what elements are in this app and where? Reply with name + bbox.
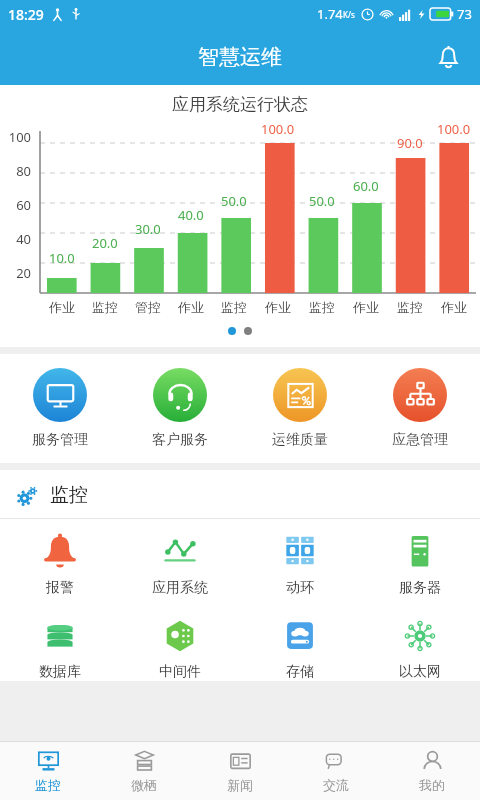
staticText: 服务器: [399, 579, 441, 597]
staticText: 报警: [46, 579, 74, 597]
staticText: 数据库: [39, 663, 81, 681]
staticText: 40.0: [178, 206, 204, 224]
staticText: 客户服务: [152, 431, 208, 449]
button[interactable]: 客户服务: [120, 368, 240, 449]
staticText: 80: [0, 162, 31, 180]
staticText: 管控: [135, 299, 161, 315]
staticText: 作业: [441, 299, 467, 315]
staticText: 监控: [35, 777, 61, 793]
button[interactable]: 中间件: [120, 617, 240, 681]
staticText: 以太网: [399, 663, 441, 681]
button[interactable]: 数据库: [0, 617, 120, 681]
button[interactable]: Notifications: [430, 39, 466, 75]
button[interactable]: 存储: [240, 617, 360, 681]
staticText: 监控: [221, 299, 247, 315]
button[interactable]: 应用系统: [120, 533, 240, 597]
staticText: 40: [0, 230, 31, 248]
button[interactable]: 应急管理: [360, 368, 480, 449]
staticText: 监控: [50, 483, 88, 507]
staticText: 100: [0, 128, 31, 146]
staticText: 90.0: [397, 134, 423, 152]
staticText: 作业: [178, 299, 204, 315]
button[interactable]: 以太网: [360, 617, 480, 681]
staticText: K/s: [343, 9, 355, 20]
staticText: 60.0: [353, 177, 379, 195]
staticText: 动环: [286, 579, 314, 597]
button[interactable]: 服务器: [360, 533, 480, 597]
staticText: 1.74: [317, 5, 343, 23]
button[interactable]: 运维质量: [240, 368, 360, 449]
staticText: 我的: [419, 777, 445, 793]
staticText: 作业: [265, 299, 291, 315]
staticText: 100.0: [261, 120, 295, 138]
staticText: 微栖: [131, 777, 157, 793]
staticText: 应用系统: [152, 579, 208, 597]
staticText: 应用系统运行状态: [0, 94, 480, 115]
button[interactable]: 服务管理: [0, 368, 120, 449]
staticText: 监控: [309, 299, 335, 315]
staticText: 运维质量: [272, 431, 328, 449]
staticText: 60: [0, 196, 31, 214]
button[interactable]: 报警: [0, 533, 120, 597]
staticText: 中间件: [159, 663, 201, 681]
staticText: 存储: [286, 663, 314, 681]
staticText: 监控: [397, 299, 423, 315]
staticText: 20.0: [92, 234, 118, 252]
staticText: 50.0: [309, 192, 335, 210]
staticText: 交流: [323, 777, 349, 793]
button[interactable]: 动环: [240, 533, 360, 597]
button[interactable]: 我的: [384, 742, 480, 800]
staticText: 100.0: [437, 120, 471, 138]
button[interactable]: 监控: [0, 742, 96, 800]
staticText: 新闻: [227, 777, 253, 793]
staticText: 智慧运维: [198, 44, 282, 70]
button[interactable]: 微栖: [96, 742, 192, 800]
button[interactable]: 交流: [288, 742, 384, 800]
staticText: 服务管理: [32, 431, 88, 449]
button[interactable]: 新闻: [192, 742, 288, 800]
staticText: 18:29: [8, 5, 44, 24]
staticText: 30.0: [135, 220, 161, 238]
staticText: 应急管理: [392, 431, 448, 449]
staticText: 73: [457, 5, 472, 23]
staticText: 50.0: [221, 192, 247, 210]
staticText: 监控: [92, 299, 118, 315]
staticText: 20: [0, 264, 31, 282]
staticText: 作业: [353, 299, 379, 315]
staticText: 作业: [49, 299, 75, 315]
staticText: 10.0: [49, 249, 75, 267]
